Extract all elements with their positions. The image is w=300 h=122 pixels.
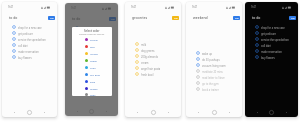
button[interactable]: vacuum living room	[186, 62, 242, 68]
staticText: make reservation	[81, 51, 102, 54]
button[interactable]: Cyan	[72, 64, 112, 71]
staticText: go to the gym	[202, 82, 219, 85]
staticText: groceries	[132, 15, 148, 20]
staticText: Indigo	[90, 87, 98, 90]
staticText: get pedicure	[81, 33, 97, 36]
staticText: shop for a new case	[81, 27, 105, 30]
button[interactable]: go to the gym	[186, 80, 242, 86]
button[interactable]: call dairi	[2, 42, 57, 48]
button[interactable]: call dairi	[65, 43, 118, 49]
staticText: cream	[141, 61, 149, 64]
button[interactable]: make reservation	[2, 48, 57, 54]
staticText: milk	[141, 43, 147, 46]
staticText: buy flowers	[261, 56, 275, 59]
button[interactable]: dog greens	[125, 47, 181, 53]
staticText: get pedicure	[261, 32, 277, 35]
button[interactable]: Home	[269, 110, 274, 115]
staticText: Cyan	[90, 66, 96, 69]
button[interactable]: make reservation	[245, 48, 298, 54]
button[interactable]: buy flowers	[2, 54, 57, 60]
staticText: call dairi	[261, 44, 271, 47]
staticText: 9:41	[71, 6, 77, 10]
staticText: fresh basil	[141, 73, 154, 76]
button[interactable]: Edit list	[289, 16, 296, 20]
button[interactable]: fresh basil	[125, 71, 181, 77]
staticText: 9:41	[192, 5, 198, 9]
button[interactable]: shop for a new case	[65, 25, 118, 31]
button[interactable]: Indigo	[72, 85, 112, 92]
staticText: Select color	[84, 29, 100, 33]
button[interactable]: Edit list	[172, 16, 179, 20]
button[interactable]: Grey	[72, 92, 112, 96]
staticText: get pedicure	[18, 32, 34, 35]
button[interactable]: Edit list	[233, 16, 240, 20]
button[interactable]: Edit list	[109, 17, 116, 21]
button[interactable]: do 30 pushups	[186, 56, 242, 62]
button[interactable]: book a trainer	[186, 86, 242, 92]
button[interactable]: service the speedothon	[245, 36, 298, 42]
button[interactable]: buy flowers	[245, 54, 298, 60]
button[interactable]: Edit list	[48, 16, 55, 20]
button[interactable]: read letter to Steve	[186, 74, 242, 80]
button[interactable]: Home	[27, 110, 32, 115]
button[interactable]: get pedicure	[245, 30, 298, 36]
staticText: service the speedothon	[261, 38, 289, 41]
button[interactable]: wake up	[186, 50, 242, 56]
button[interactable]: cream	[125, 59, 181, 65]
staticText: service the speedothon	[81, 39, 109, 42]
staticText: vacuum living room	[202, 64, 226, 67]
button[interactable]: Red	[72, 43, 112, 50]
staticText: edit	[174, 17, 178, 20]
staticText: service the speedothon	[18, 38, 46, 41]
button[interactable]: get pedicure	[65, 31, 118, 37]
staticText: 9:41	[251, 5, 257, 9]
staticText: call dairi	[18, 44, 28, 47]
button[interactable]: meditate 20 mins	[186, 68, 242, 74]
button[interactable]: 200g almonds	[125, 53, 181, 59]
staticText: edit	[291, 17, 295, 20]
staticText: make reservation	[18, 50, 39, 53]
button[interactable]: Home	[212, 110, 217, 115]
staticText: Red	[90, 45, 95, 48]
staticText: shop for a new case	[261, 26, 285, 29]
staticText: 9:41	[131, 5, 137, 9]
staticText: Choose a color for your list	[79, 33, 105, 36]
button[interactable]: Home	[89, 109, 94, 114]
button[interactable]: buy flowers	[65, 55, 118, 61]
staticText: book a trainer	[202, 88, 219, 91]
button[interactable]: Green	[72, 57, 112, 64]
button[interactable]: Blue	[72, 78, 112, 85]
button[interactable]: make reservation	[65, 49, 118, 55]
staticText: buy flowers	[81, 57, 95, 60]
button[interactable]: milk	[125, 41, 181, 47]
button[interactable]: Home	[151, 110, 156, 115]
staticText: do 30 pushups	[202, 58, 220, 61]
button[interactable]: service the speedothon	[2, 36, 57, 42]
button[interactable]: shop for a new case	[245, 24, 298, 30]
staticText: buy flowers	[18, 56, 32, 59]
staticText: meditate 20 mins	[202, 70, 223, 73]
staticText: Purple	[90, 38, 98, 41]
button[interactable]: call dairi	[245, 42, 298, 48]
staticText: make reservation	[261, 50, 282, 53]
button[interactable]: Sky Blue	[72, 71, 112, 78]
button[interactable]: Amber	[72, 50, 112, 57]
button[interactable]: service the speedothon	[65, 37, 118, 43]
staticText: Blue	[90, 80, 96, 83]
staticText: 9:41	[8, 5, 14, 9]
button[interactable]: get pedicure	[2, 30, 57, 36]
button[interactable]: shop for a new case	[2, 24, 57, 30]
button[interactable]: angel hair pasta	[125, 65, 181, 71]
staticText: to do	[9, 15, 18, 20]
button[interactable]: Purple	[72, 36, 112, 43]
